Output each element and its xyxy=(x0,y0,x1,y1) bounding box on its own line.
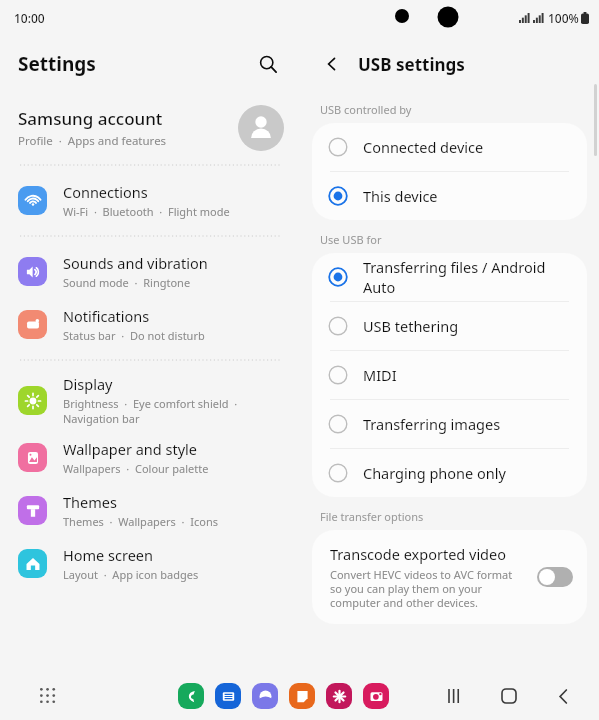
staticText: Profile · Apps and features xyxy=(18,133,167,149)
staticText: Samsung account xyxy=(18,107,163,130)
staticText: Transferring files / Android Auto xyxy=(363,257,573,297)
button[interactable]: Transcode exported video toggle xyxy=(537,567,573,587)
staticText: File transfer options xyxy=(320,509,424,524)
button[interactable]: Search xyxy=(250,46,286,82)
staticText: Wallpaper and style xyxy=(63,439,197,459)
button[interactable]: Gallery xyxy=(326,683,352,709)
staticText: Transferring images xyxy=(363,414,501,434)
button[interactable]: Transferring images xyxy=(312,400,587,448)
staticText: USB settings xyxy=(358,53,465,76)
button[interactable]: Sounds and vibration xyxy=(0,245,300,298)
staticText: USB tethering xyxy=(363,316,459,336)
staticText: Use USB for xyxy=(320,232,382,247)
staticText: MIDI xyxy=(363,365,397,385)
button[interactable]: MIDI xyxy=(312,351,587,399)
staticText: Connections xyxy=(63,182,148,202)
button[interactable]: Camera xyxy=(363,683,389,709)
button[interactable]: Notifications xyxy=(0,298,300,351)
staticText: Notifications xyxy=(63,306,150,326)
staticText: Display xyxy=(63,374,113,394)
staticText: Themes · Wallpapers · Icons xyxy=(63,514,218,529)
staticText: This device xyxy=(363,186,438,206)
button[interactable]: Charging phone only xyxy=(312,449,587,497)
staticText: Status bar · Do not disturb xyxy=(63,328,205,343)
staticText: Home screen xyxy=(63,545,153,565)
button[interactable]: Recents xyxy=(441,682,469,710)
button[interactable]: Back xyxy=(316,48,348,80)
staticText: Wi-Fi · Bluetooth · Flight mode xyxy=(63,204,230,219)
button[interactable]: Phone xyxy=(178,683,204,709)
button[interactable]: Connected device xyxy=(312,123,587,171)
button[interactable]: Transcode exported video xyxy=(312,530,587,624)
staticText: 100% xyxy=(548,10,579,26)
staticText: Themes xyxy=(63,492,117,512)
staticText: Transcode exported video xyxy=(330,544,506,564)
staticText: 10:00 xyxy=(14,10,45,26)
button[interactable]: Themes xyxy=(0,484,300,537)
button[interactable]: USB tethering xyxy=(312,302,587,350)
staticText: USB controlled by xyxy=(320,102,412,117)
staticText: Brightness · Eye comfort shield · xyxy=(63,396,238,411)
button[interactable]: This device xyxy=(312,172,587,220)
staticText: Layout · App icon badges xyxy=(63,567,199,582)
staticText: Connected device xyxy=(363,137,484,157)
staticText: Sound mode · Ringtone xyxy=(63,275,191,290)
button[interactable]: Notes xyxy=(289,683,315,709)
button[interactable]: Apps xyxy=(32,680,64,712)
button[interactable]: Home screen xyxy=(0,537,300,590)
button[interactable]: Transferring files / Android Auto xyxy=(312,253,587,301)
button[interactable]: Messages xyxy=(215,683,241,709)
staticText: Wallpapers · Colour palette xyxy=(63,461,209,476)
button[interactable]: Home xyxy=(495,682,523,710)
button[interactable]: Connections xyxy=(0,174,300,227)
staticText: Convert HEVC videos to AVC format so you… xyxy=(330,567,525,610)
staticText: Charging phone only xyxy=(363,463,506,483)
button[interactable]: Wallpaper and style xyxy=(0,431,300,484)
staticText: Navigation bar xyxy=(63,411,140,426)
staticText: Settings xyxy=(18,51,96,77)
button[interactable]: Back xyxy=(549,682,577,710)
button[interactable]: Internet xyxy=(252,683,278,709)
staticText: Sounds and vibration xyxy=(63,253,208,273)
button[interactable]: Samsung account xyxy=(0,92,300,164)
button[interactable]: Display xyxy=(0,369,300,431)
